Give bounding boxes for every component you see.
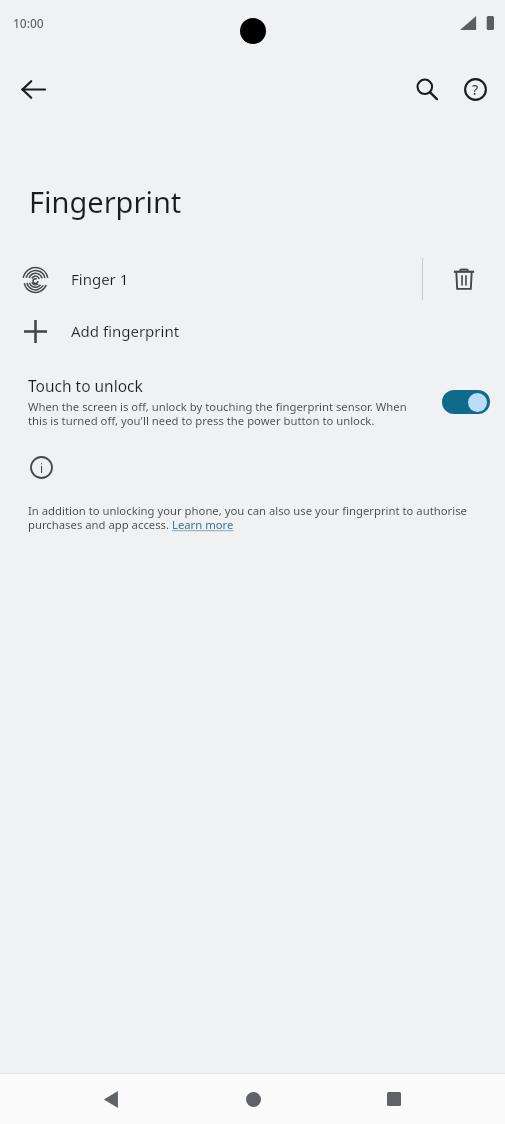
button[interactable]: Back xyxy=(9,65,57,113)
button[interactable]: Home xyxy=(223,1074,283,1124)
staticText: Finger 1 xyxy=(71,269,129,289)
staticText: ? xyxy=(472,80,479,99)
staticText: Touch to unlock xyxy=(28,375,143,396)
button[interactable]: Back xyxy=(81,1074,141,1124)
button[interactable]: Touch to unlock toggle xyxy=(439,382,493,422)
staticText: Fingerprint xyxy=(29,182,182,221)
button[interactable]: Delete fingerprint xyxy=(423,253,505,305)
button[interactable]: Help xyxy=(451,65,499,113)
button[interactable]: Recent apps xyxy=(364,1074,424,1124)
staticText: Add fingerprint xyxy=(71,321,180,341)
button[interactable]: Search xyxy=(403,65,451,113)
staticText: In addition to unlocking your phone, you… xyxy=(28,503,491,533)
button[interactable]: Touch to unlock xyxy=(0,371,505,434)
staticText: 10:00 xyxy=(13,15,44,31)
button[interactable]: Add fingerprint xyxy=(0,305,505,357)
staticText: When the screen is off, unlock by touchi… xyxy=(28,399,409,428)
staticText: i xyxy=(40,460,44,476)
button[interactable]: Finger 1 xyxy=(0,253,505,305)
